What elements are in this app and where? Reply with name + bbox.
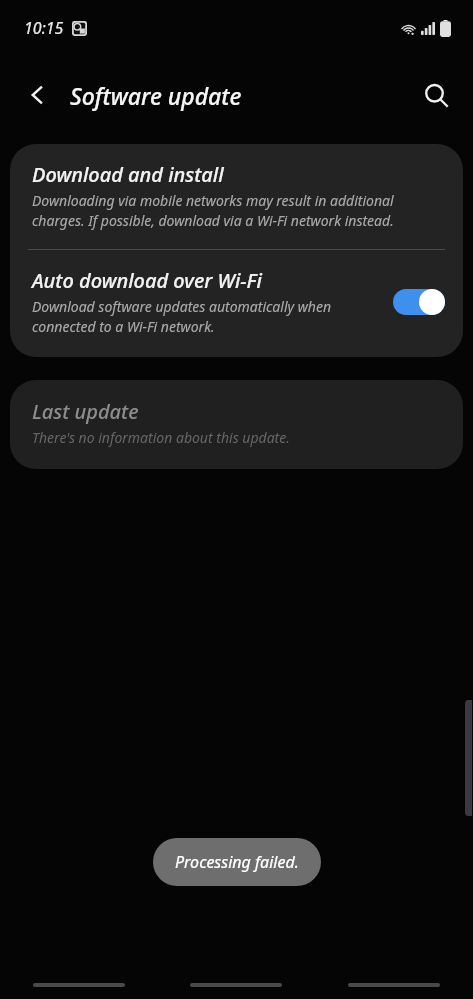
staticText: Downloading via mobile networks may resu… bbox=[32, 191, 441, 231]
button[interactable]: Recents bbox=[0, 955, 157, 999]
staticText: 10:15 bbox=[24, 17, 64, 39]
staticText: Last update bbox=[32, 398, 139, 425]
button[interactable]: Auto download over Wi-Fi toggle bbox=[393, 287, 445, 317]
button[interactable]: Back bbox=[315, 955, 473, 999]
button[interactable]: Search bbox=[413, 72, 459, 118]
staticText: Software update bbox=[70, 80, 242, 111]
staticText: Download and install bbox=[32, 161, 224, 188]
button[interactable]: Back bbox=[16, 73, 60, 117]
staticText: Processing failed. bbox=[175, 851, 299, 873]
staticText: There's no information about this update… bbox=[32, 428, 290, 447]
button[interactable]: Auto download over Wi-Fi bbox=[10, 250, 463, 357]
staticText: Download software updates automatically … bbox=[32, 297, 383, 337]
button[interactable]: Last update bbox=[10, 380, 463, 469]
button[interactable]: Home bbox=[157, 955, 315, 999]
button[interactable]: Processing failed. bbox=[153, 838, 321, 886]
staticText: Auto download over Wi-Fi bbox=[32, 267, 262, 294]
button[interactable]: Download and install bbox=[10, 144, 463, 249]
